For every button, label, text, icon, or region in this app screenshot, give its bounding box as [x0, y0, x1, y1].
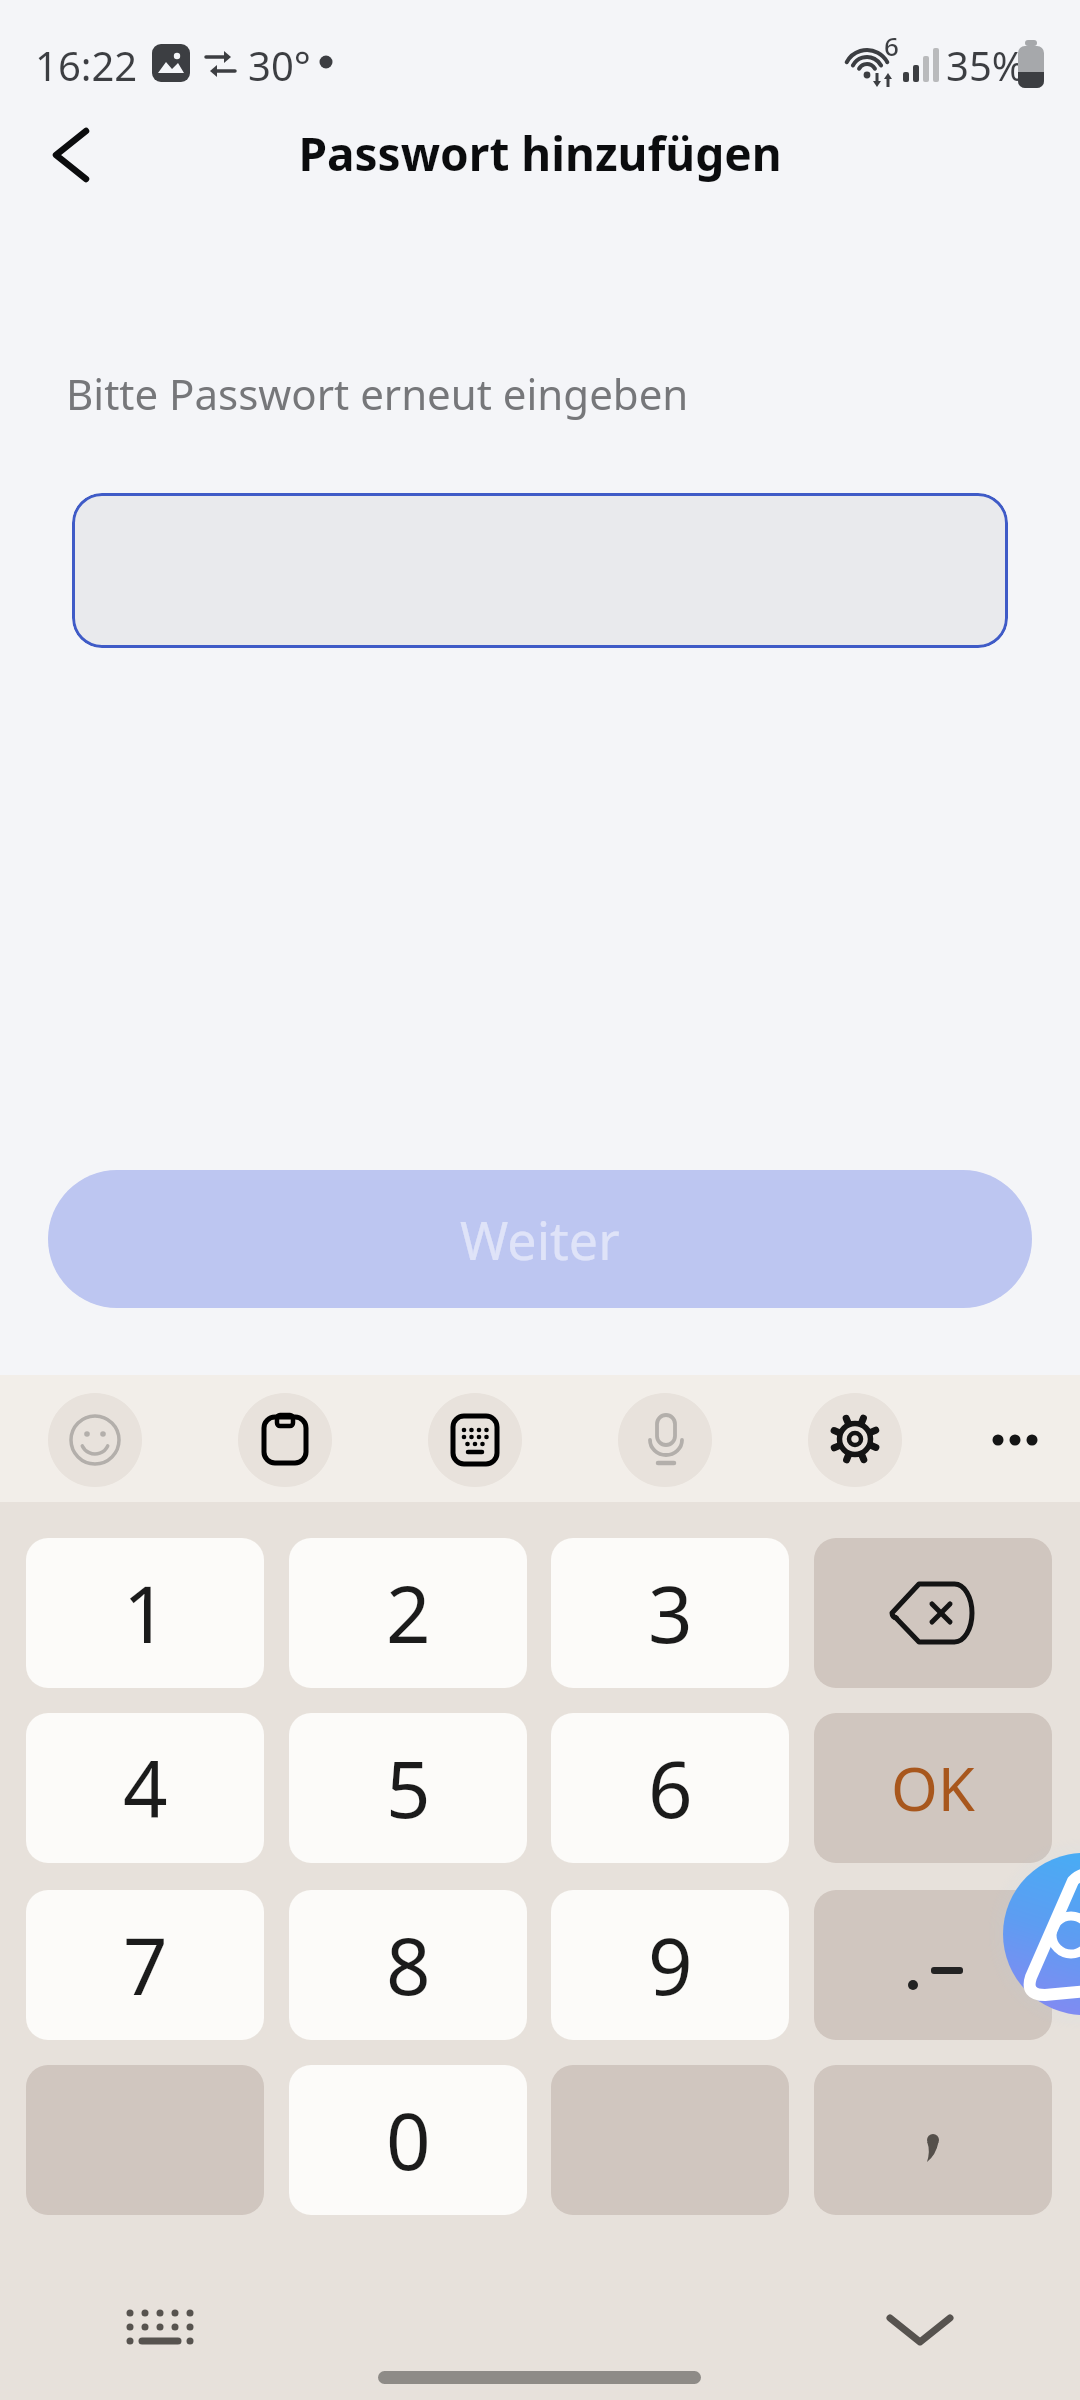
button[interactable]: 3 [551, 1538, 789, 1688]
staticText: 1 [123, 1560, 168, 1666]
button[interactable] [100, 2285, 220, 2375]
button[interactable] [814, 2065, 1052, 2215]
button[interactable]: 9 [551, 1890, 789, 2040]
staticText: 6 [648, 1735, 693, 1841]
staticText: 35% [946, 38, 1025, 92]
button[interactable]: 2 [289, 1538, 527, 1688]
button[interactable] [808, 1393, 902, 1487]
button[interactable] [814, 1890, 1052, 2040]
staticText: 4 [123, 1735, 168, 1841]
button[interactable]: 1 [26, 1538, 264, 1688]
staticText: 8 [386, 1912, 431, 2018]
staticText: 9 [648, 1912, 693, 2018]
button[interactable] [72, 493, 1008, 648]
staticText: OK [891, 1747, 975, 1829]
staticText: Weiter [460, 1204, 620, 1275]
button[interactable] [814, 1538, 1052, 1688]
button[interactable] [20, 110, 120, 200]
staticText: 6 [884, 28, 899, 63]
button[interactable] [618, 1393, 712, 1487]
button[interactable] [860, 2290, 980, 2370]
button[interactable] [1003, 1853, 1080, 2015]
button[interactable] [238, 1393, 332, 1487]
staticText: Passwort hinzufügen [0, 122, 1080, 185]
staticText: 7 [123, 1912, 168, 2018]
button[interactable] [48, 1393, 142, 1487]
button[interactable]: Weiter [48, 1170, 1032, 1308]
staticText: 3 [648, 1560, 693, 1666]
button[interactable] [428, 1393, 522, 1487]
button[interactable]: 4 [26, 1713, 264, 1863]
button[interactable]: 7 [26, 1890, 264, 2040]
button[interactable]: 6 [551, 1713, 789, 1863]
staticText: 5 [386, 1735, 431, 1841]
staticText: Bitte Passwort erneut eingeben [66, 365, 689, 422]
staticText: 0 [386, 2087, 431, 2193]
button[interactable] [975, 1410, 1055, 1470]
button[interactable]: 0 [289, 2065, 527, 2215]
staticText: 16:22 [35, 38, 138, 92]
button[interactable]: 8 [289, 1890, 527, 2040]
staticText: 2 [386, 1560, 431, 1666]
button[interactable]: 5 [289, 1713, 527, 1863]
button[interactable]: OK [814, 1713, 1052, 1863]
staticText: 30° [248, 38, 311, 92]
